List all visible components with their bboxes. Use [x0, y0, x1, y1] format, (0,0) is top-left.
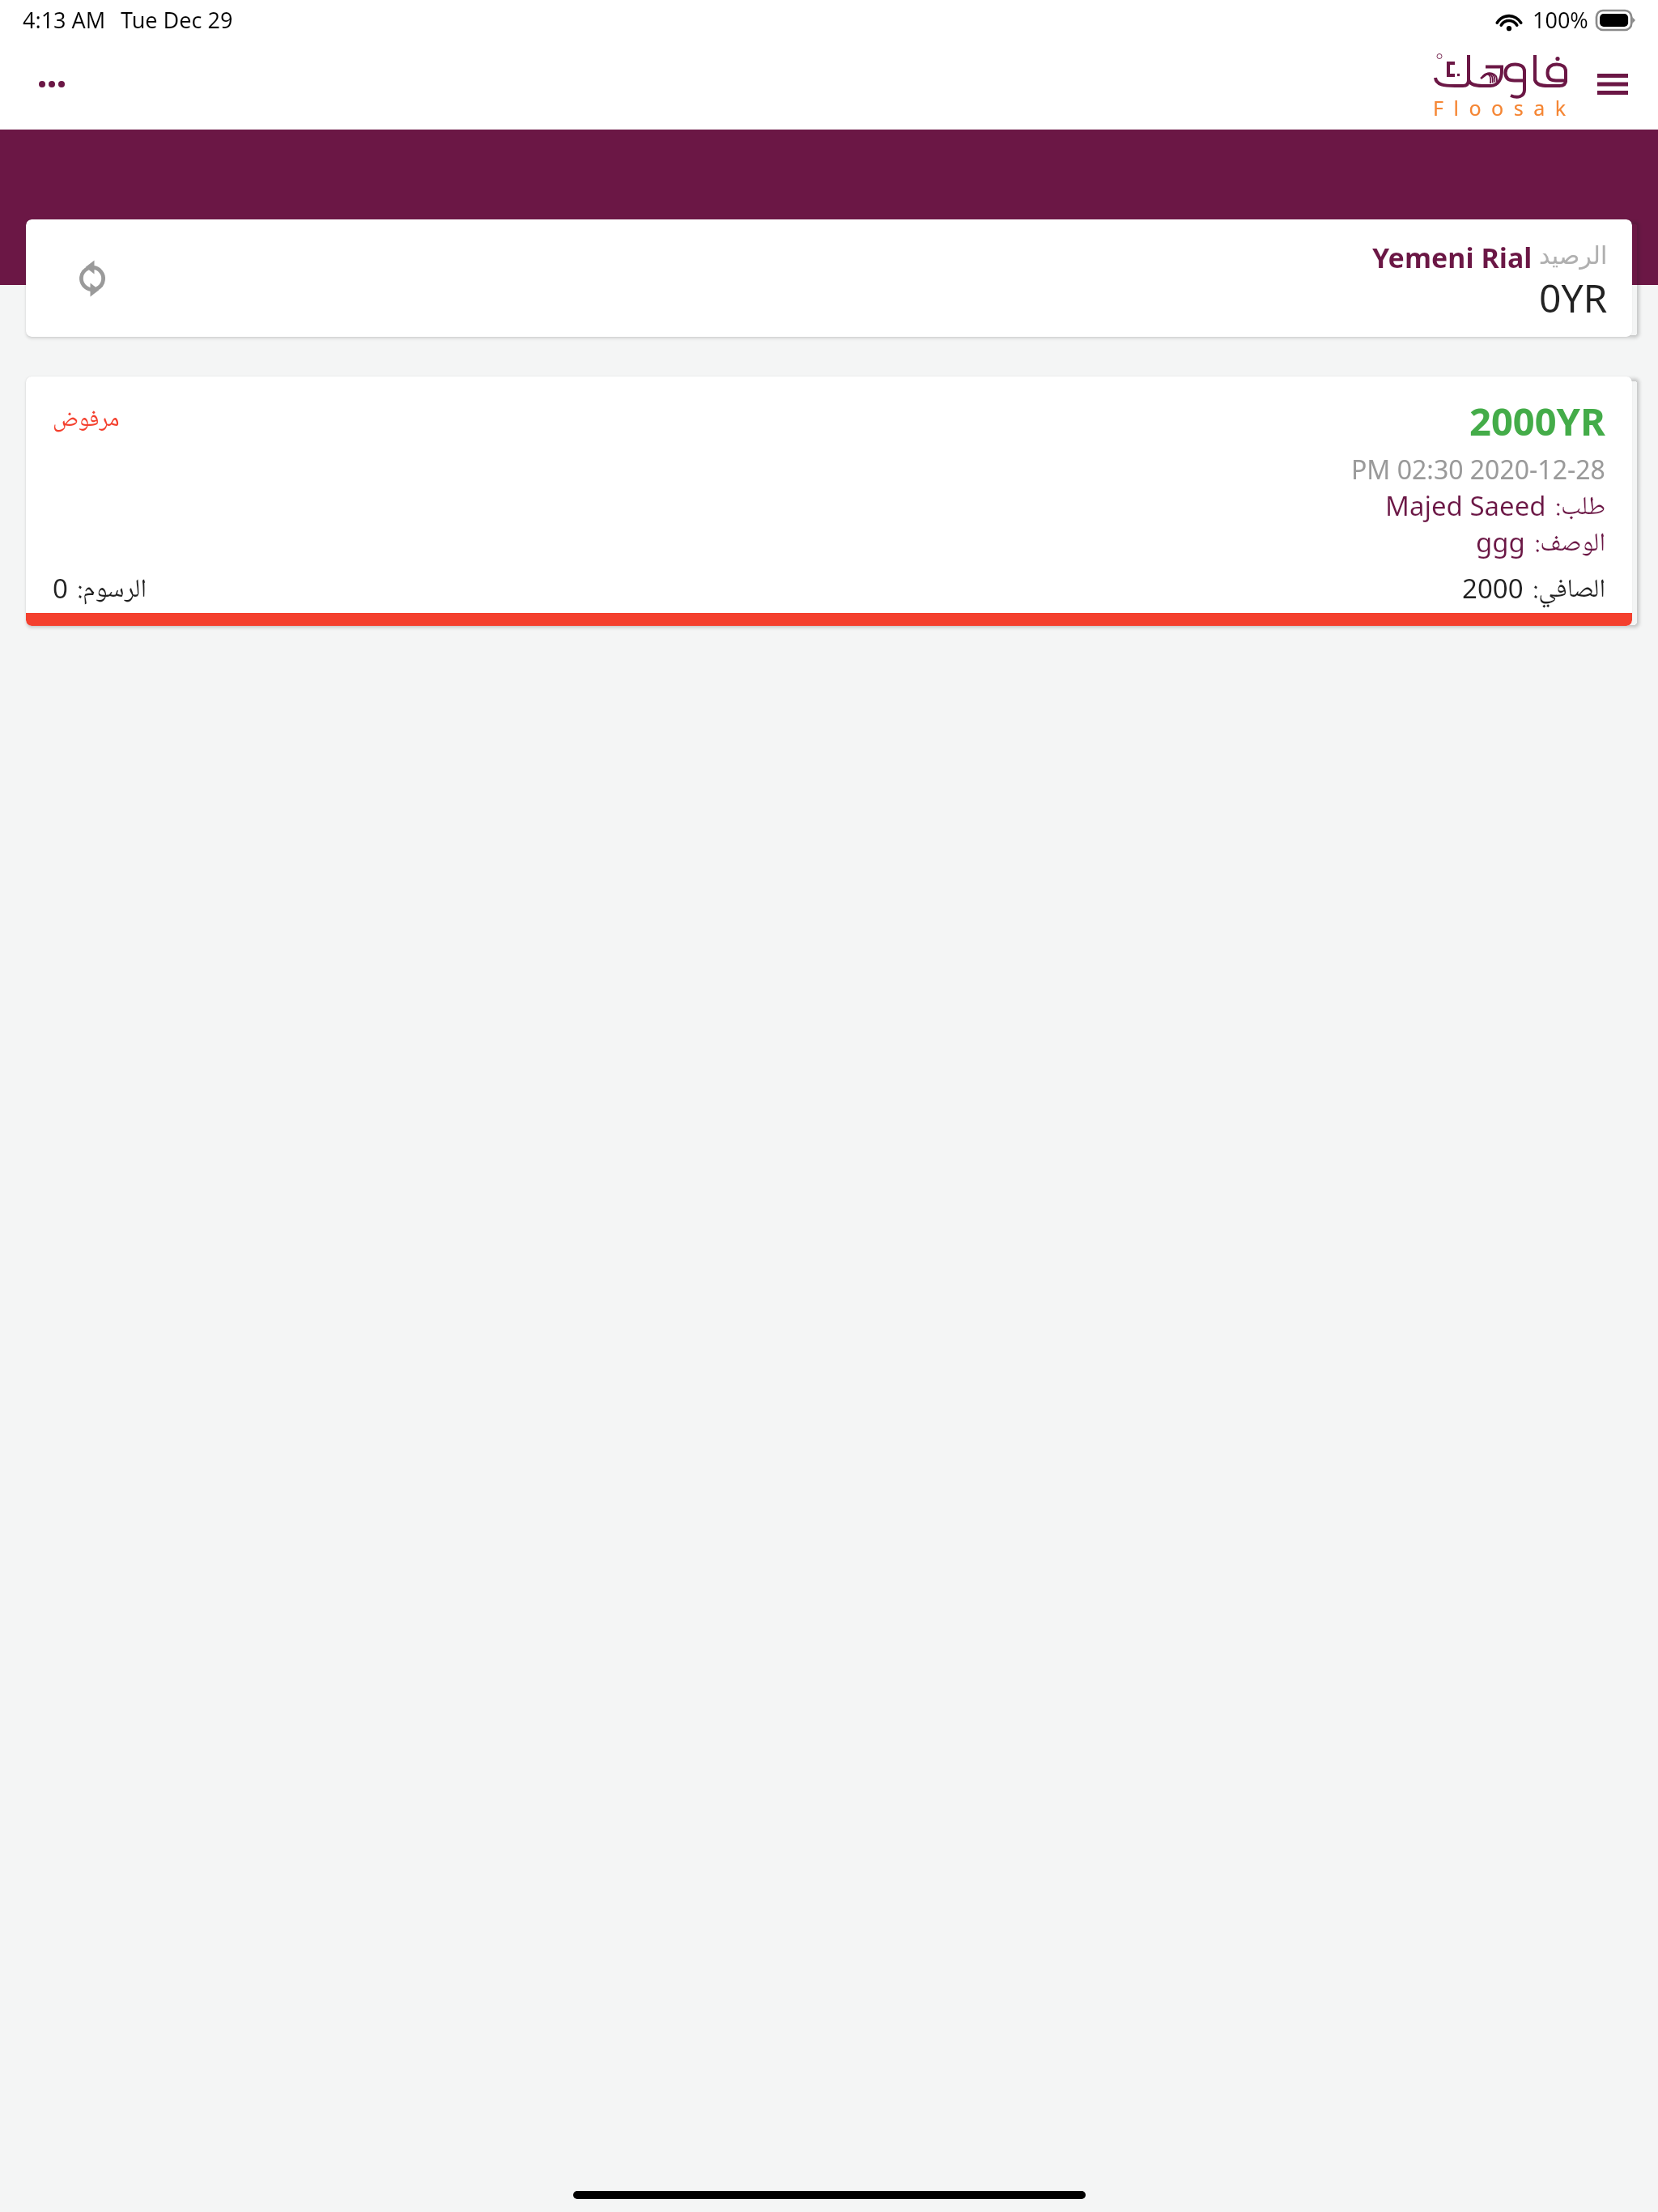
staticText: 0 [53, 570, 68, 606]
staticText: 2000YR [1469, 395, 1605, 447]
staticText: F l o o s a k [1433, 94, 1569, 121]
staticText: Yemeni Rial [1372, 239, 1533, 276]
button[interactable]: Refresh balance [68, 254, 117, 303]
staticText: الرصيد [1539, 241, 1608, 270]
staticText: الصافي: [1533, 569, 1605, 613]
staticText: الرسوم: [77, 569, 147, 613]
staticText: Majed Saeed [1385, 487, 1546, 524]
staticText: مرفوض [53, 401, 120, 440]
button[interactable]: More options [19, 52, 84, 117]
staticText: ggg [1476, 524, 1525, 560]
staticText: 2000 [1462, 570, 1524, 606]
button[interactable]: مرفوض [26, 376, 1632, 626]
staticText: طلب: [1555, 487, 1605, 530]
button[interactable]: Menu [1584, 56, 1641, 113]
staticText: PM 02:30 2020-12-28 [1351, 452, 1605, 487]
staticText: 4:13 AM [23, 5, 106, 35]
staticText: الوصف: [1534, 523, 1605, 567]
staticText: 0YR [1539, 271, 1608, 324]
button[interactable]: Refresh balance [26, 219, 1632, 337]
staticText: 100% [1533, 5, 1588, 35]
staticText: Tue Dec 29 [121, 5, 233, 35]
